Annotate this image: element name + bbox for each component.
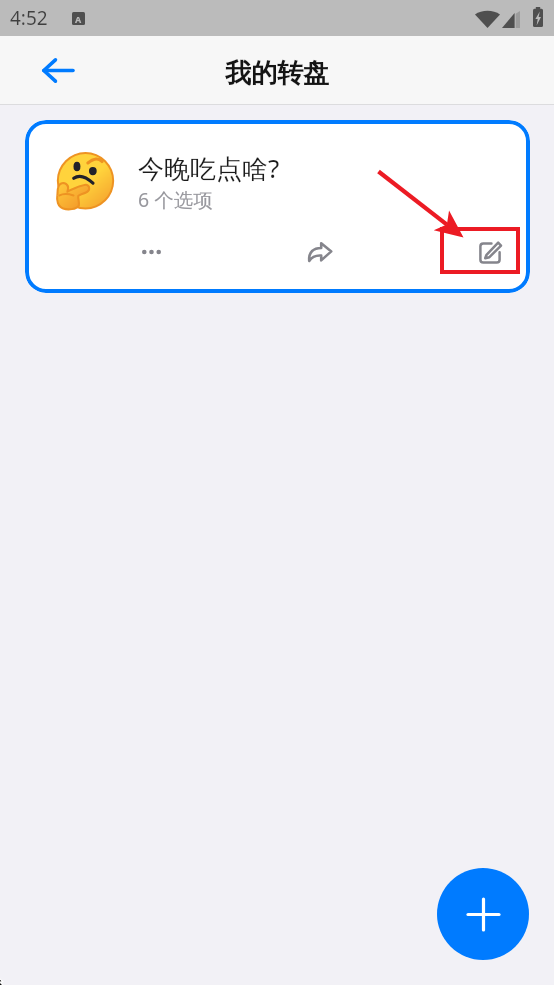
button[interactable]: Back [36,48,80,92]
button[interactable]: 今晚吃点啥? [25,120,530,293]
staticText: A [75,13,82,25]
button[interactable]: Share [292,228,348,276]
staticText: 我的转盘 [225,57,329,90]
staticText: 4:52 [10,5,48,31]
button[interactable]: Edit [440,227,520,274]
button[interactable]: Add [437,868,529,960]
staticText: 今晚吃点啥? [138,150,280,186]
button[interactable]: More options [119,228,183,276]
staticText: 6 个选项 [138,186,213,213]
